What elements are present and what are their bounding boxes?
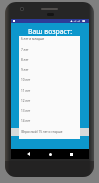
button[interactable]: Ваш возраст: — [11, 25, 89, 38]
button[interactable]: 7 лет — [19, 45, 80, 55]
button[interactable]: 11 лет — [19, 86, 80, 96]
staticText: 14 лет — [21, 119, 31, 123]
staticText: 8 лет — [21, 58, 29, 62]
button[interactable]: 9 лет — [19, 65, 80, 75]
button[interactable]: 14 лет — [19, 116, 80, 126]
button[interactable]: 6 лет и младше — [19, 34, 80, 44]
staticText: 13 лет — [21, 109, 31, 113]
button[interactable]: Recent apps — [65, 149, 77, 159]
button[interactable]: Back — [22, 149, 34, 159]
staticText: Ваш возраст: — [28, 27, 73, 36]
staticText: (Взрослый) 15 лет и старше — [21, 130, 63, 134]
button[interactable]: 12 лет — [19, 96, 80, 106]
button[interactable]: 8 лет — [19, 55, 80, 65]
staticText: 6 лет и младше — [21, 37, 45, 41]
button[interactable]: 13 лет — [19, 106, 80, 116]
staticText: 7 лет — [21, 48, 29, 52]
staticText: 11 лет — [21, 89, 31, 93]
staticText: 10 лет — [21, 78, 31, 82]
button[interactable]: 10 лет — [19, 75, 80, 85]
button[interactable]: (Взрослый) 15 лет и старше — [19, 127, 80, 137]
staticText: 9 лет — [21, 68, 29, 72]
button[interactable]: Home — [44, 149, 56, 159]
staticText: 12 лет — [21, 99, 31, 103]
